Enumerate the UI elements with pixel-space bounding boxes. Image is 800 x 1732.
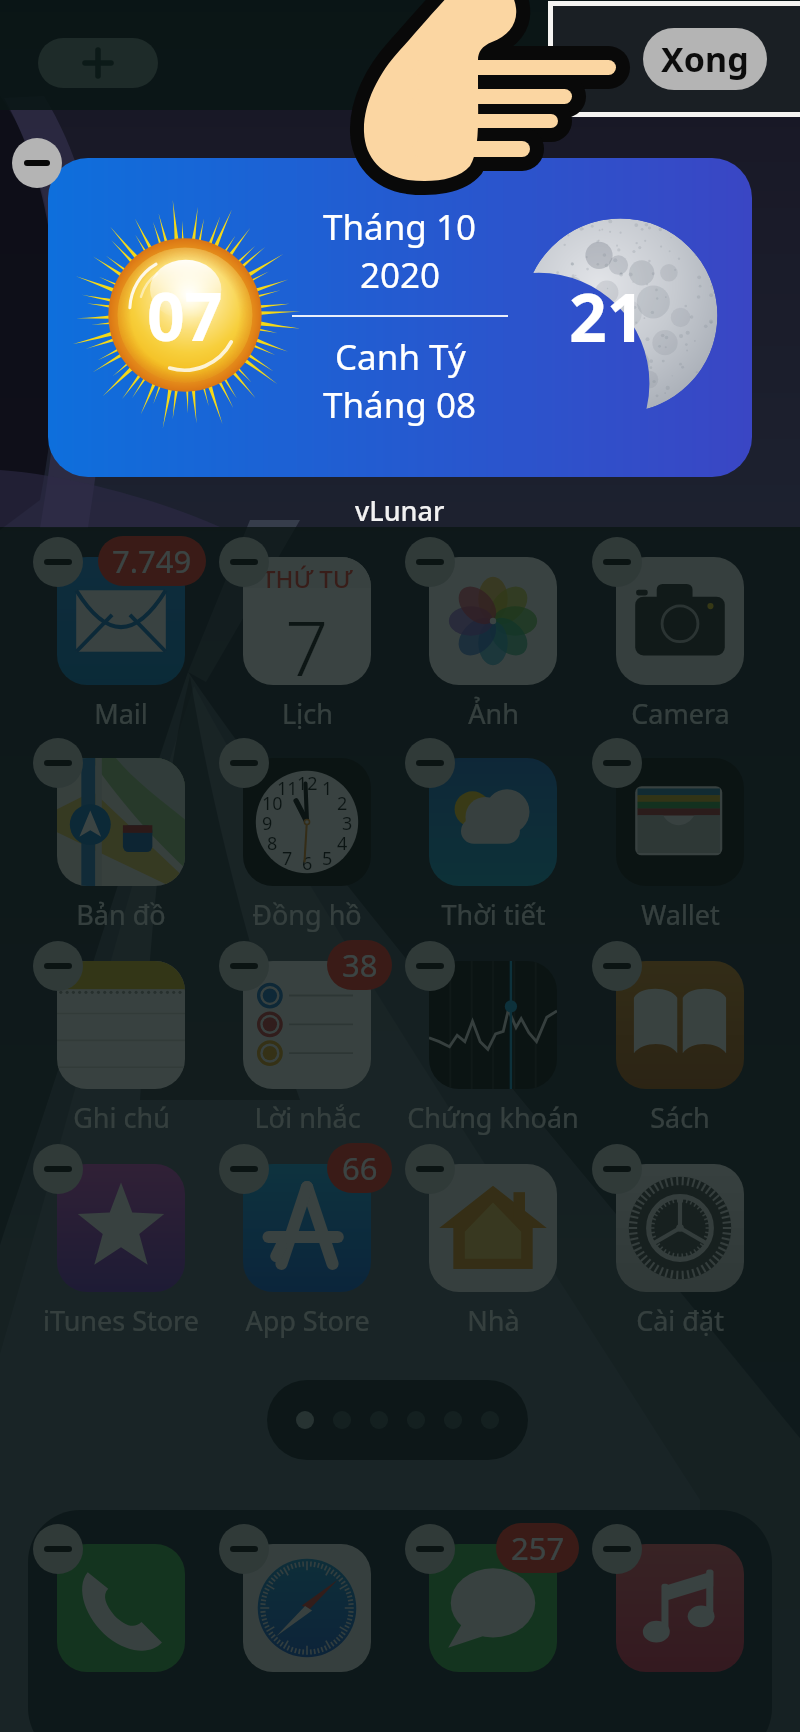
- button[interactable]: Tin nhắn: [429, 1544, 557, 1672]
- button[interactable]: Remove Đồng hồ: [219, 738, 269, 788]
- button[interactable]: Remove Điện thoại: [33, 1524, 83, 1574]
- staticText: 21: [569, 271, 645, 361]
- staticText: vLunar: [355, 492, 445, 529]
- staticText: Mail: [94, 695, 148, 732]
- button[interactable]: Ảnh: [429, 557, 557, 685]
- button[interactable]: Lời nhắc: [243, 961, 371, 1089]
- staticText: 8: [267, 831, 278, 856]
- button[interactable]: Bản đồ: [57, 758, 185, 886]
- staticText: 3: [342, 811, 353, 836]
- button[interactable]: vLunar widget: [48, 158, 752, 477]
- staticText: Wallet: [641, 896, 720, 933]
- button[interactable]: Remove App Store: [219, 1144, 269, 1194]
- button[interactable]: Remove Mail: [33, 537, 83, 587]
- staticText: 2: [337, 791, 348, 816]
- staticText: THỨ TƯ: [262, 562, 353, 595]
- staticText: Nhà: [467, 1302, 520, 1339]
- staticText: Sách: [650, 1099, 710, 1136]
- button[interactable]: Remove widget: [12, 138, 62, 188]
- staticText: 11: [277, 776, 298, 801]
- staticText: 10: [262, 791, 283, 816]
- button[interactable]: Remove Tin nhắn: [405, 1524, 455, 1574]
- button[interactable]: Remove iTunes Store: [33, 1144, 83, 1194]
- button[interactable]: Đồng hồ: [243, 758, 371, 886]
- button[interactable]: Camera: [616, 557, 744, 685]
- button[interactable]: Remove Ảnh: [405, 537, 455, 587]
- button[interactable]: Page indicator: [267, 1380, 528, 1460]
- staticText: 1: [322, 776, 333, 801]
- staticText: Xong: [661, 36, 749, 82]
- staticText: 7: [285, 595, 329, 685]
- staticText: 07: [147, 270, 223, 360]
- staticText: Ảnh: [468, 695, 519, 732]
- staticText: iTunes Store: [43, 1302, 199, 1339]
- button[interactable]: Remove Safari: [219, 1524, 269, 1574]
- button[interactable]: App Store: [243, 1164, 371, 1292]
- staticText: Lịch: [282, 695, 333, 732]
- button[interactable]: Ghi chú: [57, 961, 185, 1089]
- staticText: Camera: [631, 695, 730, 732]
- staticText: 66: [342, 1147, 378, 1189]
- button[interactable]: Remove Thời tiết: [405, 738, 455, 788]
- button[interactable]: Cài đặt: [616, 1164, 744, 1292]
- staticText: 6: [302, 851, 313, 876]
- staticText: Bản đồ: [76, 896, 166, 933]
- button[interactable]: Remove Chứng khoán: [405, 941, 455, 991]
- button[interactable]: Điện thoại: [57, 1544, 185, 1672]
- staticText: Canh Tý: [335, 333, 466, 381]
- button[interactable]: Sách: [616, 961, 744, 1089]
- button[interactable]: Lịch: [243, 557, 371, 685]
- button[interactable]: Xong: [643, 28, 767, 90]
- button[interactable]: iTunes Store: [57, 1164, 185, 1292]
- button[interactable]: Thời tiết: [429, 758, 557, 886]
- staticText: Tháng 10: [323, 203, 477, 251]
- staticText: 2020: [360, 251, 441, 299]
- button[interactable]: Safari: [243, 1544, 371, 1672]
- staticText: 4: [337, 831, 348, 856]
- button[interactable]: Nhạc: [616, 1544, 744, 1672]
- button[interactable]: Mail: [57, 557, 185, 685]
- staticText: Cài đặt: [636, 1302, 724, 1339]
- button[interactable]: Remove Nhạc: [592, 1524, 642, 1574]
- staticText: 38: [342, 944, 378, 986]
- button[interactable]: Remove Sách: [592, 941, 642, 991]
- button[interactable]: Remove Camera: [592, 537, 642, 587]
- button[interactable]: Remove Nhà: [405, 1144, 455, 1194]
- button[interactable]: Wallet: [616, 758, 744, 886]
- button[interactable]: Remove Lịch: [219, 537, 269, 587]
- button[interactable]: Remove Lời nhắc: [219, 941, 269, 991]
- staticText: Thời tiết: [441, 896, 546, 933]
- staticText: Chứng khoán: [407, 1099, 579, 1136]
- staticText: 257: [511, 1527, 565, 1569]
- staticText: Đồng hồ: [252, 896, 362, 933]
- button[interactable]: Chứng khoán: [429, 961, 557, 1089]
- button[interactable]: Add widget: [38, 38, 158, 88]
- staticText: 12: [297, 771, 318, 796]
- button[interactable]: Nhà: [429, 1164, 557, 1292]
- staticText: Lời nhắc: [254, 1099, 361, 1136]
- staticText: App Store: [245, 1302, 370, 1339]
- button[interactable]: Remove Bản đồ: [33, 738, 83, 788]
- staticText: Ghi chú: [73, 1099, 170, 1136]
- button[interactable]: Remove Cài đặt: [592, 1144, 642, 1194]
- staticText: 7.749: [112, 540, 192, 582]
- staticText: Tháng 08: [323, 381, 477, 429]
- staticText: 5: [322, 846, 333, 871]
- staticText: 9: [262, 811, 273, 836]
- staticText: 7: [282, 846, 293, 871]
- button[interactable]: Remove Wallet: [592, 738, 642, 788]
- button[interactable]: Remove Ghi chú: [33, 941, 83, 991]
